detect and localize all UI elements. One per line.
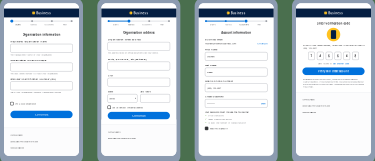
button[interactable]: Do Not Sell My Personal Information	[108, 135, 139, 141]
staticText: ••••••••	[207, 102, 215, 105]
staticText: Obeni	[207, 70, 213, 74]
button[interactable]: Set as default shipping address	[108, 106, 170, 109]
button[interactable]: Change	[257, 42, 267, 45]
button[interactable]: Get another code	[333, 62, 349, 65]
button[interactable]: Keep me signed in	[205, 127, 267, 130]
staticText: I'm a sole proprietor	[15, 102, 36, 105]
staticText: 8	[354, 54, 356, 58]
staticText: mathew@redmartbusiness.com	[205, 42, 236, 45]
staticText: Show	[261, 102, 266, 105]
staticText: CA Privacy Rights	[108, 131, 121, 133]
button[interactable]: Do Not Sell My Personal Information	[302, 103, 333, 109]
staticText: CA Privacy Rights	[302, 98, 315, 101]
staticText: Business	[231, 11, 246, 15]
button[interactable]: CA Privacy Rights	[302, 96, 333, 103]
button[interactable]: CA Privacy Rights	[10, 132, 41, 138]
staticText: ▾	[135, 97, 136, 100]
button[interactable]: CA Privacy Rights	[108, 129, 139, 135]
staticText: Do Not Sell My Personal Information	[302, 105, 330, 107]
staticText: Org info	[15, 23, 21, 26]
staticText: Organisation address	[123, 31, 154, 35]
staticText: To verify your phone number, we've sent …	[302, 44, 364, 49]
staticText: Org info	[210, 23, 216, 26]
staticText: Organisation information	[22, 33, 60, 37]
staticText: Notice at Collection	[302, 111, 316, 113]
staticText: 6	[328, 54, 330, 58]
staticText: 4	[346, 54, 348, 58]
button[interactable]: Verify and create account	[302, 67, 365, 75]
staticText: Keep me signed in	[210, 127, 228, 130]
staticText: Organisation phone number	[10, 58, 46, 62]
staticText: This is your organisation's Taxpayer Ide…	[10, 91, 61, 93]
staticText: Registered organisation name	[10, 40, 46, 43]
staticText: Finish	[160, 23, 164, 26]
staticText: Continue	[35, 113, 48, 116]
staticText: Last name	[205, 63, 216, 67]
staticText: Org info	[112, 23, 118, 26]
staticText: Suite, building, etc (optional)	[108, 57, 147, 61]
staticText: (650) 123-4567	[207, 86, 221, 89]
staticText: Finish	[63, 23, 67, 26]
staticText: Do Not Sell My Personal Information	[108, 137, 136, 139]
button[interactable]: Continue	[10, 111, 73, 118]
staticText: Do Not Sell My Personal Information	[10, 140, 38, 143]
staticText: Address	[225, 23, 232, 26]
staticText: First name	[205, 48, 217, 51]
staticText: Account information	[221, 31, 251, 35]
staticText: By clicking 'Verify and create account',…	[303, 78, 364, 88]
staticText: Business email	[205, 38, 223, 41]
staticText: State	[108, 90, 113, 93]
staticText: 4	[319, 54, 321, 58]
staticText: Verify and create account	[318, 70, 349, 73]
staticText: At least one number or special character	[208, 121, 246, 124]
staticText: Continue	[132, 114, 145, 117]
staticText: Organisation street address	[108, 38, 141, 41]
staticText: City	[108, 74, 113, 77]
staticText: ✓	[205, 118, 207, 120]
staticText: Change	[257, 42, 267, 45]
staticText: 8–100 characters	[208, 114, 224, 117]
staticText: Account info	[239, 23, 249, 26]
staticText: Enter verification code	[316, 22, 350, 25]
staticText: Get another code	[333, 62, 349, 65]
button[interactable]: Do Not Sell My Personal Information	[10, 138, 41, 145]
staticText: The address listed on official documents…	[108, 51, 159, 54]
staticText: Mobile phone number	[205, 79, 233, 82]
staticText: CA Privacy Rights	[10, 134, 23, 136]
staticText: Business	[328, 11, 343, 15]
staticText: ✓	[205, 114, 207, 117]
staticText: 7	[310, 54, 312, 58]
button[interactable]: Select	[108, 94, 137, 103]
staticText: Select	[109, 97, 115, 100]
staticText: ✓	[205, 121, 207, 124]
staticText: The best phone number to reach your orga…	[10, 72, 58, 75]
button[interactable]: Notice at Collection	[10, 145, 41, 151]
staticText: Create password	[205, 95, 224, 98]
staticText: Account info	[44, 23, 54, 26]
staticText: Mathew	[207, 55, 215, 58]
button[interactable]: Show	[261, 102, 266, 105]
staticText: Set as default shipping address	[112, 106, 143, 109]
staticText: Business	[36, 11, 51, 15]
staticText: Zip code	[140, 90, 150, 93]
staticText: Notice at Collection	[10, 147, 24, 149]
staticText: Address	[30, 23, 37, 26]
button[interactable]: Notice at Collection	[302, 109, 333, 115]
staticText: Didn't receive it?	[318, 62, 332, 65]
staticText: Address	[128, 23, 135, 26]
button[interactable]: I'm a sole proprietor	[10, 102, 73, 105]
staticText: Upper & lowercase letters	[208, 118, 232, 120]
staticText: Finish	[257, 23, 261, 26]
staticText: Account info	[142, 23, 152, 26]
staticText: Business	[133, 11, 148, 15]
staticText: Your password must include the following…	[205, 110, 249, 113]
button[interactable]: Continue	[108, 112, 170, 119]
staticText: 6	[337, 54, 339, 58]
staticText: Employer Identification Number (EIN)	[10, 77, 56, 81]
staticText: The full legal entity name of your organ…	[10, 53, 52, 56]
